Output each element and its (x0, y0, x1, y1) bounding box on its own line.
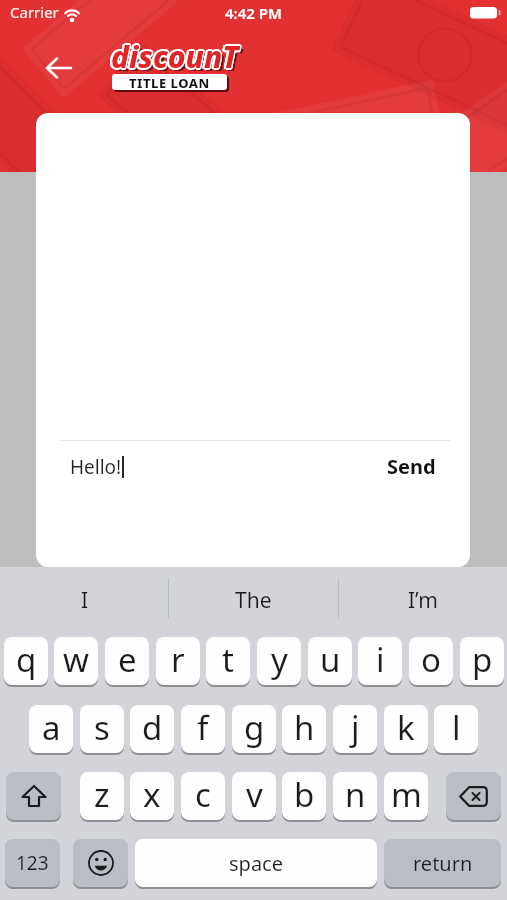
staticText: discounT (113, 39, 241, 80)
staticText: discounT (111, 34, 239, 75)
staticText: z (94, 772, 110, 817)
button[interactable]: I (0, 567, 169, 633)
button[interactable]: j (333, 705, 377, 753)
button[interactable]: z (80, 772, 124, 820)
staticText: c (195, 772, 211, 817)
staticText: 4:42 PM (225, 3, 282, 23)
staticText: i (376, 637, 385, 682)
staticText: Send (387, 453, 436, 480)
staticText: o (421, 637, 441, 682)
button[interactable]: u (308, 637, 352, 685)
staticText: discounT (109, 37, 237, 78)
button[interactable]: d (130, 705, 174, 753)
button[interactable]: I’m (338, 567, 507, 633)
button[interactable]: s (80, 705, 124, 753)
staticText: h (294, 705, 315, 750)
staticText: m (391, 772, 422, 817)
staticText: a (42, 705, 61, 750)
staticText: discounT (109, 36, 237, 77)
button[interactable]: x (130, 772, 174, 820)
staticText: k (397, 705, 415, 750)
button[interactable]: r (156, 637, 200, 685)
staticText: j (351, 705, 360, 750)
button[interactable]: space (135, 839, 377, 887)
button[interactable]: 123 (5, 839, 60, 887)
button[interactable]: p (460, 637, 504, 685)
staticText: 123 (16, 850, 49, 876)
staticText: s (94, 705, 110, 750)
button[interactable]: v (232, 772, 276, 820)
button[interactable] (446, 772, 501, 820)
staticText: q (16, 637, 37, 682)
button[interactable]: return (384, 839, 501, 887)
button[interactable]: The (169, 567, 338, 633)
staticText: t (222, 637, 234, 682)
button[interactable]: b (282, 772, 326, 820)
staticText: I’m (408, 586, 438, 615)
button[interactable]: e (105, 637, 149, 685)
staticText: b (294, 772, 315, 817)
staticText: discounT (109, 35, 237, 76)
staticText: space (229, 850, 283, 877)
button[interactable]: i (358, 637, 402, 685)
button[interactable]: k (384, 705, 428, 753)
staticText: f (197, 705, 209, 750)
button[interactable]: w (54, 637, 98, 685)
button[interactable]: g (232, 705, 276, 753)
button[interactable]: c (181, 772, 225, 820)
button[interactable]: o (409, 637, 453, 685)
button[interactable]: h (282, 705, 326, 753)
staticText: n (345, 772, 366, 817)
staticText: discounT (112, 35, 240, 76)
staticText: g (244, 705, 265, 750)
button[interactable]: l (434, 705, 478, 753)
staticText: d (142, 705, 163, 750)
button[interactable]: t (206, 637, 250, 685)
button[interactable] (6, 772, 61, 820)
button[interactable]: q (4, 637, 48, 685)
staticText: l (452, 705, 461, 750)
button[interactable] (40, 51, 74, 85)
staticText: The (235, 586, 272, 615)
staticText: discounT (112, 36, 240, 77)
staticText: v (246, 772, 263, 817)
button[interactable] (73, 839, 128, 887)
staticText: TITLE LOAN (129, 74, 210, 90)
staticText: p (472, 637, 493, 682)
staticText: r (171, 637, 185, 682)
staticText: x (143, 772, 161, 817)
staticText: discounT (111, 38, 239, 79)
staticText: discounT (112, 37, 240, 78)
staticText: w (63, 637, 89, 682)
staticText: I (81, 586, 89, 615)
button[interactable]: f (181, 705, 225, 753)
staticText: y (271, 637, 288, 682)
staticText: Hello! (70, 454, 122, 480)
button[interactable]: n (333, 772, 377, 820)
button[interactable]: Send (387, 453, 436, 480)
staticText: u (320, 637, 341, 682)
staticText: e (118, 637, 137, 682)
staticText: return (413, 850, 473, 877)
staticText: discounT (111, 36, 239, 77)
button[interactable]: a (29, 705, 73, 753)
staticText: Carrier (10, 2, 59, 22)
button[interactable]: m (384, 772, 428, 820)
staticText: discounT (114, 39, 242, 80)
button[interactable]: y (257, 637, 301, 685)
